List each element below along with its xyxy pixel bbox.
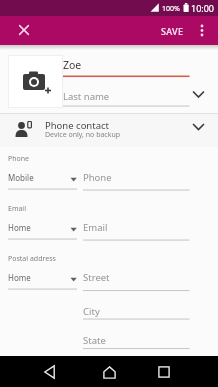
staticText: Postal address xyxy=(8,254,56,264)
button[interactable] xyxy=(83,327,190,349)
button[interactable] xyxy=(36,360,62,384)
button[interactable] xyxy=(83,268,190,291)
staticText: Last name xyxy=(63,90,110,103)
staticText: Phone contact xyxy=(45,119,109,132)
button[interactable] xyxy=(96,360,122,384)
staticText: Email xyxy=(8,204,26,214)
staticText: SAVE xyxy=(161,25,184,37)
button[interactable]: SAVE xyxy=(155,20,190,41)
button[interactable] xyxy=(63,55,190,78)
button[interactable] xyxy=(63,85,190,107)
staticText: Phone xyxy=(8,154,30,164)
staticText: Home xyxy=(8,272,31,283)
button[interactable] xyxy=(8,55,63,108)
button[interactable] xyxy=(194,19,210,42)
staticText: Home xyxy=(8,222,31,233)
staticText: State xyxy=(83,334,106,347)
button[interactable] xyxy=(83,297,190,319)
staticText: Device only, no backup xyxy=(45,130,121,140)
button[interactable] xyxy=(8,167,78,189)
staticText: 100% xyxy=(162,4,180,14)
staticText: Mobile xyxy=(8,172,34,183)
button[interactable] xyxy=(13,19,35,41)
staticText: 10:00 xyxy=(191,2,215,14)
button[interactable] xyxy=(8,217,78,239)
button[interactable] xyxy=(8,267,78,289)
button[interactable] xyxy=(151,360,177,384)
staticText: City xyxy=(83,305,100,318)
button[interactable] xyxy=(83,218,190,240)
staticText: Email xyxy=(83,221,108,234)
staticText: Phone xyxy=(83,171,112,184)
button[interactable] xyxy=(0,113,218,147)
button[interactable] xyxy=(83,168,190,190)
staticText: Street xyxy=(83,271,110,284)
staticText: Zoe xyxy=(63,58,82,72)
